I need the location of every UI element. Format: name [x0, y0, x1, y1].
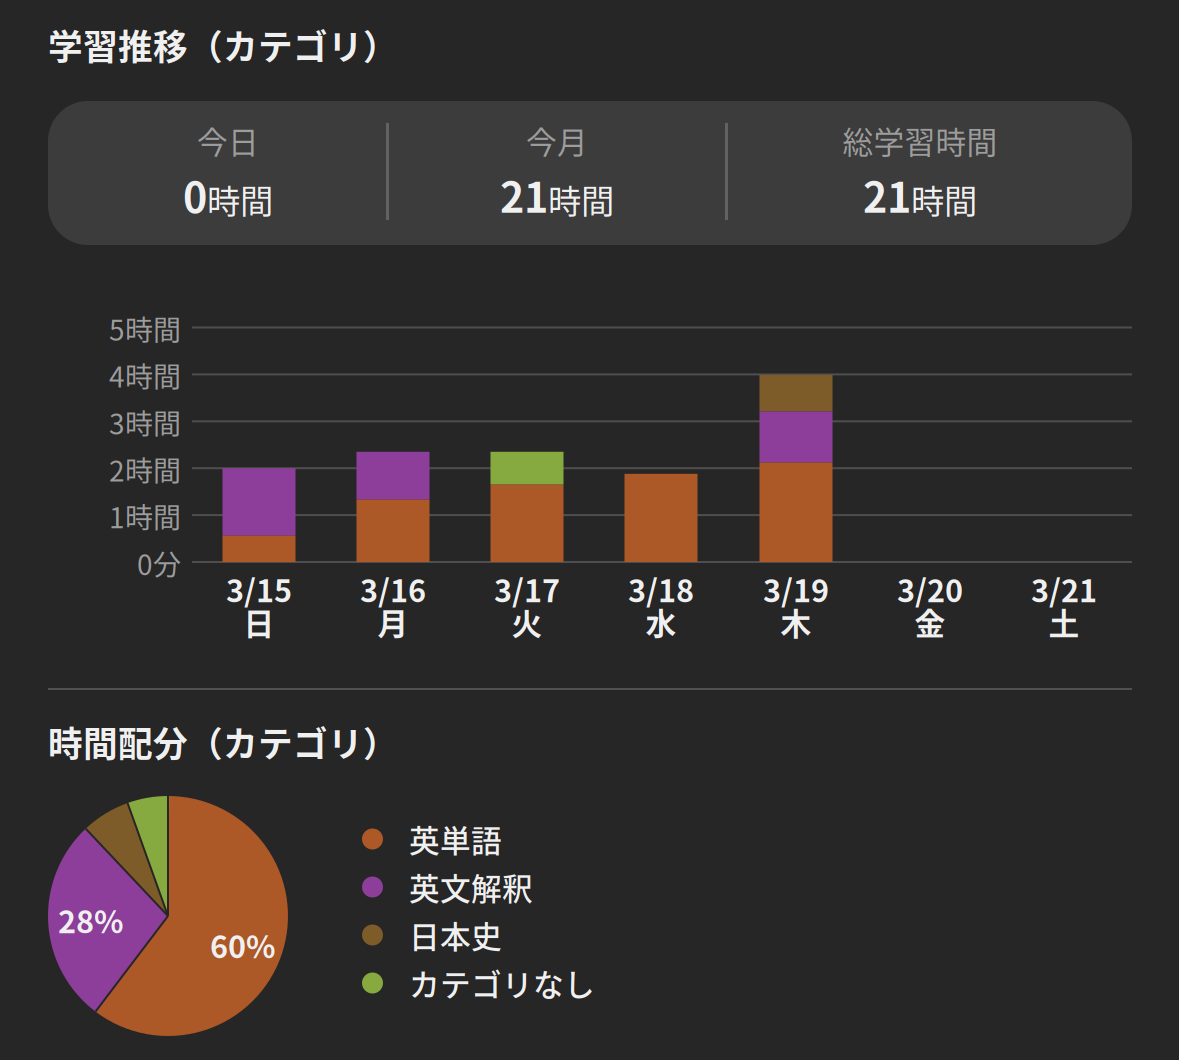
staticText: 1時間 — [109, 496, 181, 536]
staticText: 日 — [243, 600, 274, 644]
staticText: 21時間 — [863, 165, 977, 224]
staticText: 日本史 — [409, 913, 502, 957]
staticText: 3/17 — [494, 567, 560, 611]
staticText: 金 — [914, 600, 945, 644]
staticText: 火 — [511, 600, 542, 644]
staticText: 2時間 — [109, 449, 181, 489]
staticText: 3/18 — [628, 567, 694, 611]
staticText: 3/19 — [763, 567, 829, 611]
staticText: 月 — [377, 600, 408, 644]
staticText: 今月 — [526, 118, 588, 162]
staticText: 3時間 — [109, 402, 181, 442]
staticText: 英単語 — [409, 817, 502, 861]
staticText: 5時間 — [109, 308, 181, 349]
staticText: 21時間 — [500, 165, 614, 224]
staticText: 3/21 — [1031, 567, 1097, 611]
staticText: 土 — [1048, 600, 1079, 644]
staticText: 水 — [645, 600, 676, 644]
staticText: 3/20 — [897, 567, 963, 611]
staticText: 3/16 — [360, 567, 426, 611]
staticText: 0時間 — [183, 165, 273, 224]
staticText: 総学習時間 — [842, 118, 997, 162]
staticText: 3/15 — [226, 567, 292, 611]
staticText: 4時間 — [109, 355, 181, 396]
staticText: 英文解釈 — [409, 865, 533, 909]
staticText: 木 — [780, 600, 811, 644]
staticText: 28% — [58, 898, 124, 942]
staticText: カテゴリなし — [409, 961, 595, 1005]
staticText: 時間配分（カテゴリ） — [48, 717, 398, 767]
staticText: 今日 — [197, 118, 259, 162]
staticText: 0分 — [137, 543, 181, 583]
staticText: 学習推移（カテゴリ） — [48, 20, 398, 70]
staticText: 60% — [210, 923, 276, 967]
